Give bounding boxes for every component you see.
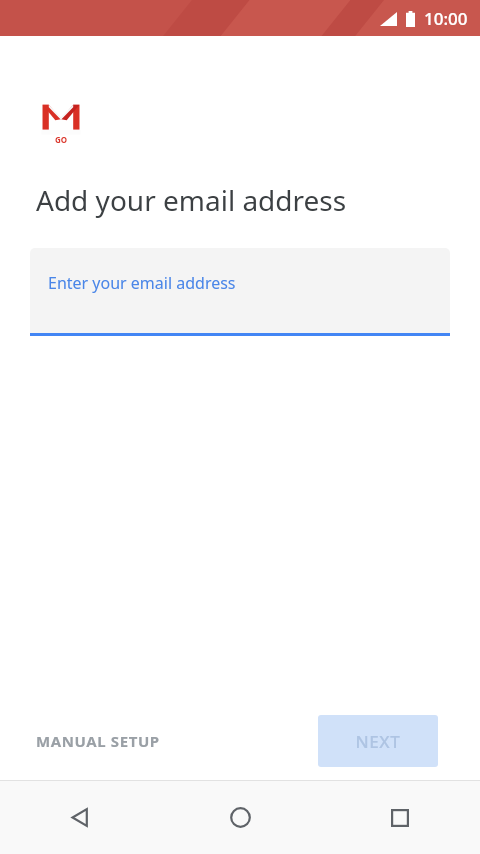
button[interactable]: NEXT (318, 715, 438, 767)
staticText: GO (55, 134, 68, 145)
button[interactable]: MANUAL SETUP (24, 721, 172, 761)
button[interactable]: Recent apps (320, 781, 480, 854)
staticText: Enter your email address (48, 272, 236, 294)
staticText: Add your email address (36, 181, 347, 219)
button[interactable]: Back (0, 781, 160, 854)
staticText: MANUAL SETUP (36, 731, 160, 751)
staticText: NEXT (355, 730, 401, 753)
button[interactable]: Home (160, 781, 320, 854)
button[interactable]: Enter your email address (30, 248, 450, 333)
staticText: 10:00 (424, 7, 468, 30)
